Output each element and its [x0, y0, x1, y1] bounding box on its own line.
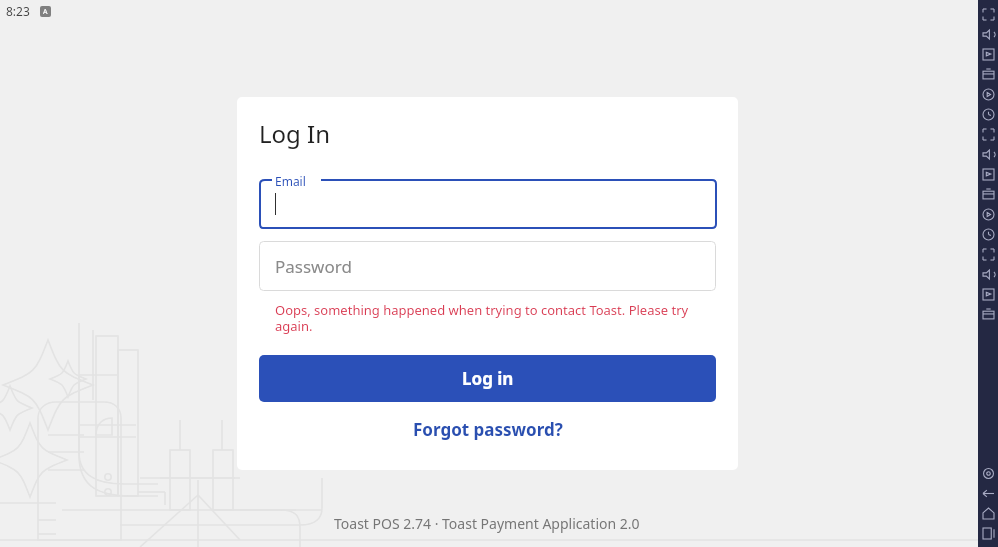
button[interactable]: Password [259, 241, 716, 291]
button[interactable]: Tool 14 [978, 264, 998, 284]
button[interactable]: Tool 7 [978, 124, 998, 144]
button[interactable]: Tool 2 [978, 24, 998, 44]
button[interactable]: Tool 8 [978, 144, 998, 164]
staticText: Password [275, 255, 352, 278]
button[interactable]: Tool 5 [978, 84, 998, 104]
button[interactable]: Tool 16 [978, 304, 998, 324]
button[interactable]: Tool 11 [978, 204, 998, 224]
button[interactable]: Tool 1 [978, 4, 998, 24]
button[interactable]: Tool 3 [978, 44, 998, 64]
staticText: Toast POS 2.74 · Toast Payment Applicati… [334, 514, 640, 533]
button[interactable]: Back [978, 483, 998, 503]
staticText: 8:23 [6, 3, 30, 19]
staticText: Email [275, 173, 306, 189]
button[interactable]: Log in [259, 355, 716, 402]
staticText: Log In [259, 117, 331, 150]
staticText: Oops, something happened when trying to … [275, 301, 690, 334]
button[interactable] [259, 173, 716, 228]
button[interactable]: Tool 6 [978, 104, 998, 124]
button[interactable]: Tool 4 [978, 64, 998, 84]
button[interactable]: Tool 15 [978, 284, 998, 304]
button[interactable]: Tool 10 [978, 184, 998, 204]
staticText: Forgot password? [413, 418, 563, 441]
button[interactable]: Tool 9 [978, 164, 998, 184]
button[interactable]: Recents [978, 523, 998, 543]
button[interactable]: Home [978, 503, 998, 523]
button[interactable]: Forgot password? [259, 414, 716, 444]
button[interactable]: Tool 12 [978, 224, 998, 244]
staticText: Log in [462, 367, 514, 390]
button[interactable]: Tool 13 [978, 244, 998, 264]
staticText: A [43, 7, 48, 17]
button[interactable]: Settings [978, 463, 998, 483]
